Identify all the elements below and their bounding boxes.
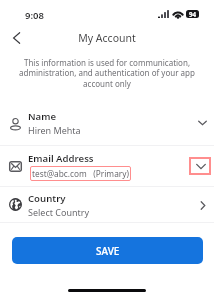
button[interactable]: Expand name xyxy=(194,115,210,131)
button[interactable]: Expand email options xyxy=(189,157,211,175)
button[interactable]: Name xyxy=(0,100,214,145)
staticText: 9:08 xyxy=(25,9,44,22)
staticText: This information is used for communicati… xyxy=(14,57,200,90)
staticText: SAVE xyxy=(96,244,120,258)
button[interactable]: Back xyxy=(5,27,27,49)
button[interactable]: SAVE xyxy=(12,237,203,264)
staticText: Hiren Mehta xyxy=(28,124,81,136)
staticText: Name xyxy=(28,110,57,123)
staticText: Select Country xyxy=(28,206,90,218)
staticText: My Account xyxy=(0,31,214,45)
staticText: 94 xyxy=(189,10,197,18)
button[interactable]: Country xyxy=(0,187,214,222)
staticText: test@abc.com (Primary) xyxy=(32,168,129,179)
button[interactable]: Select country xyxy=(195,197,211,213)
button[interactable]: Email Address xyxy=(0,146,214,186)
staticText: Email Address xyxy=(28,152,94,165)
staticText: Country xyxy=(28,192,66,205)
